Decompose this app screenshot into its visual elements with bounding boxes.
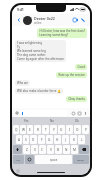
staticText: Q xyxy=(15,128,18,132)
button[interactable]: V xyxy=(47,145,54,154)
staticText: E xyxy=(29,128,31,132)
button[interactable]: Good xyxy=(75,64,87,70)
staticText: B xyxy=(57,148,60,152)
button[interactable]: P xyxy=(82,125,89,134)
button[interactable]: 123 xyxy=(13,155,24,164)
button[interactable]: Call xyxy=(79,16,87,24)
button[interactable]: N xyxy=(63,145,70,154)
button[interactable] xyxy=(20,110,68,116)
button[interactable]: Who we xyxy=(15,80,30,86)
staticText: L xyxy=(81,138,83,142)
button[interactable]: M xyxy=(71,145,78,154)
button[interactable]: O xyxy=(74,125,81,134)
staticText: H xyxy=(56,138,59,142)
button[interactable]: T xyxy=(42,125,49,134)
button[interactable]: Back xyxy=(15,16,23,24)
staticText: X xyxy=(34,148,36,152)
staticText: online xyxy=(34,21,42,25)
staticText: Ty xyxy=(17,45,21,49)
staticText: We learned some big xyxy=(17,49,46,53)
staticText: Hi Dexter, how was the first class? xyxy=(39,29,85,33)
button[interactable]: K xyxy=(70,135,77,144)
button[interactable]: F xyxy=(38,135,45,144)
staticText: Learning something? xyxy=(39,33,68,37)
staticText: O xyxy=(76,128,79,132)
staticText: Dexter 0x22 xyxy=(34,16,55,21)
staticText: W xyxy=(22,128,25,132)
button[interactable]: I xyxy=(66,125,73,134)
button[interactable]: Y xyxy=(50,125,57,134)
button[interactable]: Will also make a border force 🔔 xyxy=(15,88,63,94)
button[interactable]: G xyxy=(46,135,53,144)
button[interactable]: Z xyxy=(23,145,30,154)
staticText: 123 xyxy=(16,158,21,161)
staticText: I xyxy=(69,128,71,132)
staticText: Yes xyxy=(24,119,29,123)
button[interactable]: I was enlightening xyxy=(15,40,66,62)
button[interactable]: A xyxy=(16,135,22,144)
staticText: J xyxy=(65,138,66,142)
button[interactable]: Microphone xyxy=(82,110,88,116)
button[interactable]: Rate up the session xyxy=(56,72,87,78)
button[interactable]: space xyxy=(35,155,72,164)
button[interactable]: E xyxy=(27,125,33,134)
button[interactable]: Emoji xyxy=(70,110,76,116)
staticText: V xyxy=(50,148,52,152)
button[interactable]: J xyxy=(62,135,69,144)
staticText: F xyxy=(41,138,43,142)
staticText: P xyxy=(85,128,87,132)
button[interactable]: W xyxy=(20,125,26,134)
staticText: K xyxy=(73,138,75,142)
staticText: Good xyxy=(77,65,85,69)
staticText: Will also make a border force 🔔 xyxy=(17,89,61,93)
staticText: A xyxy=(18,138,21,142)
button[interactable]: Hi Dexter, how was the first class? xyxy=(37,28,87,38)
staticText: G xyxy=(48,138,51,142)
button[interactable]: B xyxy=(55,145,62,154)
button[interactable]: Shift xyxy=(13,145,22,154)
button[interactable]: Yes xyxy=(13,118,39,124)
staticText: I was enlightening xyxy=(17,41,43,45)
button[interactable]: No xyxy=(39,118,64,124)
staticText: Z xyxy=(26,148,28,152)
button[interactable]: Gallery xyxy=(76,110,82,116)
button[interactable]: return xyxy=(73,155,89,164)
button[interactable]: Backspace xyxy=(79,145,89,154)
button[interactable]: H xyxy=(54,135,61,144)
staticText: M xyxy=(73,148,76,152)
button[interactable]: Emoji keyboard xyxy=(25,155,34,164)
button[interactable]: C xyxy=(39,145,46,154)
staticText: Y xyxy=(53,128,55,132)
staticText: C xyxy=(41,148,44,152)
staticText: T xyxy=(45,128,47,132)
button[interactable]: Q xyxy=(13,125,19,134)
staticText: U xyxy=(60,128,63,132)
staticText: D xyxy=(32,138,35,142)
staticText: Who we xyxy=(17,81,28,85)
button[interactable]: X xyxy=(31,145,38,154)
button[interactable]: Add attachment xyxy=(14,110,20,116)
button[interactable]: U xyxy=(58,125,65,134)
staticText: Ok xyxy=(75,119,79,123)
staticText: No xyxy=(50,119,54,123)
button[interactable]: Okay thanks xyxy=(66,96,87,102)
staticText: Come by again after the afternoon xyxy=(17,57,64,61)
button[interactable]: L xyxy=(78,135,85,144)
button[interactable]: D xyxy=(30,135,37,144)
button[interactable]: Video call xyxy=(71,16,79,24)
button[interactable]: R xyxy=(34,125,41,134)
staticText: return xyxy=(77,158,85,161)
button[interactable]: S xyxy=(23,135,29,144)
staticText: R xyxy=(37,128,39,132)
staticText: 9:41 xyxy=(17,7,24,12)
button[interactable]: Dictation xyxy=(16,169,20,173)
button[interactable]: Ok xyxy=(64,118,89,124)
staticText: N xyxy=(65,148,68,152)
staticText: S xyxy=(25,138,27,142)
staticText: Okay thanks xyxy=(68,97,85,101)
staticText: The dog came rather. xyxy=(17,53,46,57)
staticText: space xyxy=(50,158,58,162)
staticText: Rate up the session xyxy=(58,73,85,77)
